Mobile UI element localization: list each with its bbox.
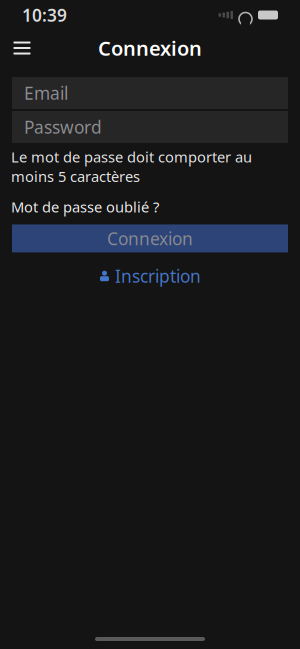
staticText: Connexion: [107, 227, 193, 250]
button[interactable]: Mot de passe oublié ?: [11, 197, 159, 216]
button[interactable]: Inscription: [89, 261, 211, 290]
button[interactable]: Password: [12, 111, 288, 143]
staticText: Email: [24, 81, 68, 104]
staticText: Inscription: [115, 264, 201, 287]
staticText: 10:39: [22, 3, 67, 26]
staticText: Password: [24, 115, 102, 138]
button[interactable]: Connexion: [12, 224, 288, 252]
button[interactable]: Menu: [5, 31, 39, 65]
staticText: Connexion: [98, 35, 202, 61]
staticText: Le mot de passe doit comporter au moins …: [11, 147, 252, 186]
staticText: Mot de passe oublié ?: [11, 197, 159, 216]
button[interactable]: Email: [12, 77, 288, 109]
